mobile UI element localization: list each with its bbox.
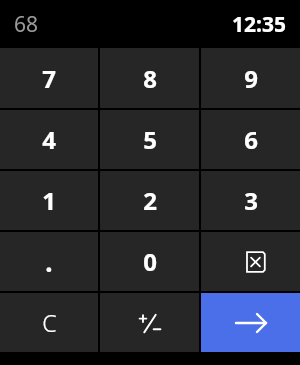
- staticText: 8: [143, 62, 157, 95]
- staticText: 12:35: [232, 10, 286, 39]
- staticText: 7: [42, 62, 56, 95]
- button[interactable]: Submit: [201, 293, 300, 352]
- staticText: 5: [143, 123, 157, 156]
- button[interactable]: Toggle sign: [100, 293, 199, 352]
- staticText: C: [42, 307, 57, 338]
- button[interactable]: 4: [0, 110, 98, 169]
- staticText: 0: [143, 245, 157, 278]
- button[interactable]: 2: [100, 171, 199, 230]
- staticText: 68: [14, 10, 39, 39]
- button[interactable]: 0: [100, 232, 199, 291]
- staticText: 2: [143, 184, 157, 217]
- button[interactable]: Backspace: [201, 232, 300, 291]
- button[interactable]: C: [0, 293, 98, 352]
- staticText: 9: [244, 62, 258, 95]
- staticText: .: [45, 244, 53, 279]
- staticText: 1: [42, 184, 56, 217]
- button[interactable]: 9: [201, 48, 300, 108]
- button[interactable]: 6: [201, 110, 300, 169]
- staticText: 3: [244, 184, 258, 217]
- staticText: 6: [244, 123, 258, 156]
- button[interactable]: 8: [100, 48, 199, 108]
- button[interactable]: .: [0, 232, 98, 291]
- button[interactable]: 3: [201, 171, 300, 230]
- staticText: 4: [42, 123, 56, 156]
- button[interactable]: 7: [0, 48, 98, 108]
- button[interactable]: 1: [0, 171, 98, 230]
- button[interactable]: 5: [100, 110, 199, 169]
